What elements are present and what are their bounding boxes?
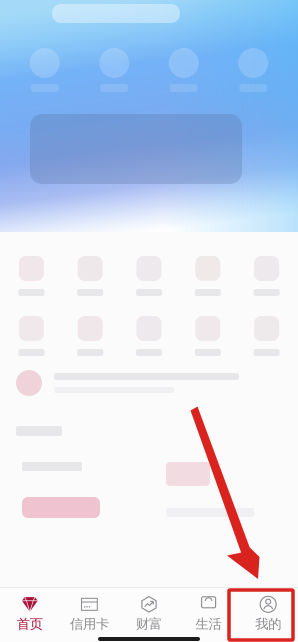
button[interactable]: Service <box>61 256 120 296</box>
button[interactable]: 首页 <box>0 586 60 634</box>
button[interactable]: Quick action <box>79 48 149 92</box>
button[interactable]: 财富 <box>119 586 179 634</box>
button[interactable]: Service <box>120 256 178 296</box>
button[interactable]: Card two <box>154 448 288 536</box>
button[interactable]: Service <box>178 316 237 356</box>
button[interactable]: Promotion <box>0 356 298 410</box>
staticText: 信用卡 <box>70 616 109 632</box>
button[interactable]: Quick action <box>10 48 79 92</box>
button[interactable]: Card one <box>10 448 144 536</box>
button[interactable]: 我的 <box>238 586 298 634</box>
staticText: 财富 <box>136 616 162 632</box>
staticText: 生活 <box>196 616 222 632</box>
button[interactable]: Service <box>178 256 237 296</box>
button[interactable]: Service <box>237 256 296 296</box>
staticText: 我的 <box>255 616 281 632</box>
button[interactable]: Service <box>2 316 61 356</box>
staticText: 首页 <box>17 616 43 632</box>
button[interactable]: 信用卡 <box>60 586 119 634</box>
button[interactable]: 生活 <box>179 586 238 634</box>
button[interactable]: Quick action <box>149 48 218 92</box>
button[interactable]: Service <box>237 316 296 356</box>
button[interactable]: Service <box>61 316 120 356</box>
button[interactable]: Service <box>2 256 61 296</box>
button[interactable]: Service <box>120 316 178 356</box>
button[interactable]: Quick action <box>218 48 288 92</box>
